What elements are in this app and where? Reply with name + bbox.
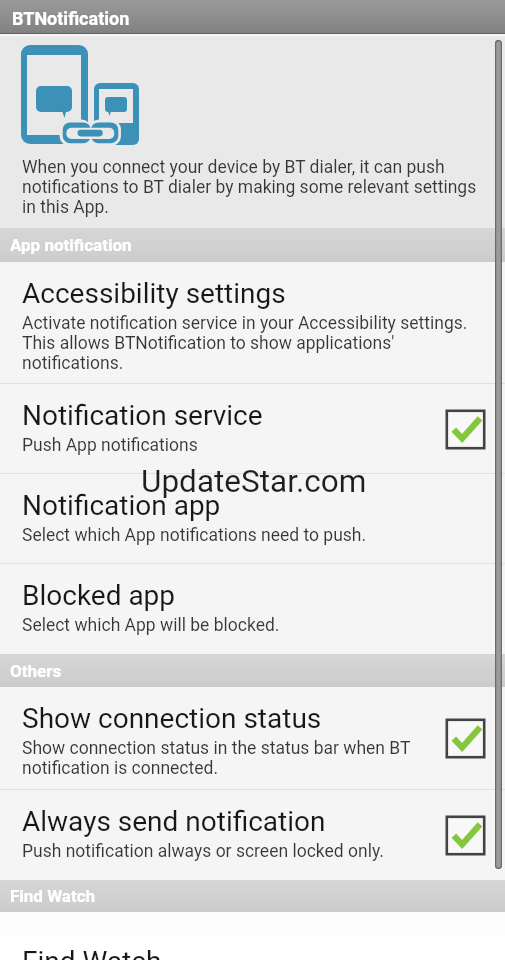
staticText: Accessibility settings (22, 277, 286, 310)
button[interactable]: Notification app (0, 474, 505, 563)
button[interactable]: Show connection status (0, 687, 505, 789)
staticText: UpdateStar.com (141, 463, 367, 500)
staticText: Others (10, 661, 62, 681)
button[interactable]: Blocked app (0, 564, 505, 654)
staticText: Always send notification (22, 805, 326, 838)
staticText: Blocked app (22, 579, 176, 612)
button[interactable]: Find Watch (0, 912, 505, 960)
staticText: Notification app (22, 489, 221, 522)
button[interactable]: Accessibility settings (0, 262, 505, 383)
staticText: When you connect your device by BT diale… (22, 157, 485, 217)
button[interactable]: Toggle (437, 807, 493, 863)
staticText: Show connection status (22, 702, 322, 735)
staticText: Push notification always or screen locke… (22, 841, 384, 862)
staticText: Activate notification service in your Ac… (22, 313, 497, 373)
staticText: Show connection status in the status bar… (22, 738, 433, 778)
staticText: Find Watch (22, 945, 162, 960)
button[interactable]: Always send notification (0, 790, 505, 880)
staticText: Select which App notifications need to p… (22, 525, 367, 546)
staticText: Find Watch (10, 886, 96, 906)
button[interactable]: Toggle (437, 401, 493, 457)
staticText: App notification (10, 235, 132, 255)
button[interactable]: Toggle (437, 710, 493, 766)
staticText: BTNotification (12, 8, 130, 29)
button[interactable]: Notification service (0, 384, 505, 473)
staticText: Notification service (22, 399, 263, 432)
staticText: Push App notifications (22, 435, 198, 456)
staticText: Select which App will be blocked. (22, 615, 280, 636)
